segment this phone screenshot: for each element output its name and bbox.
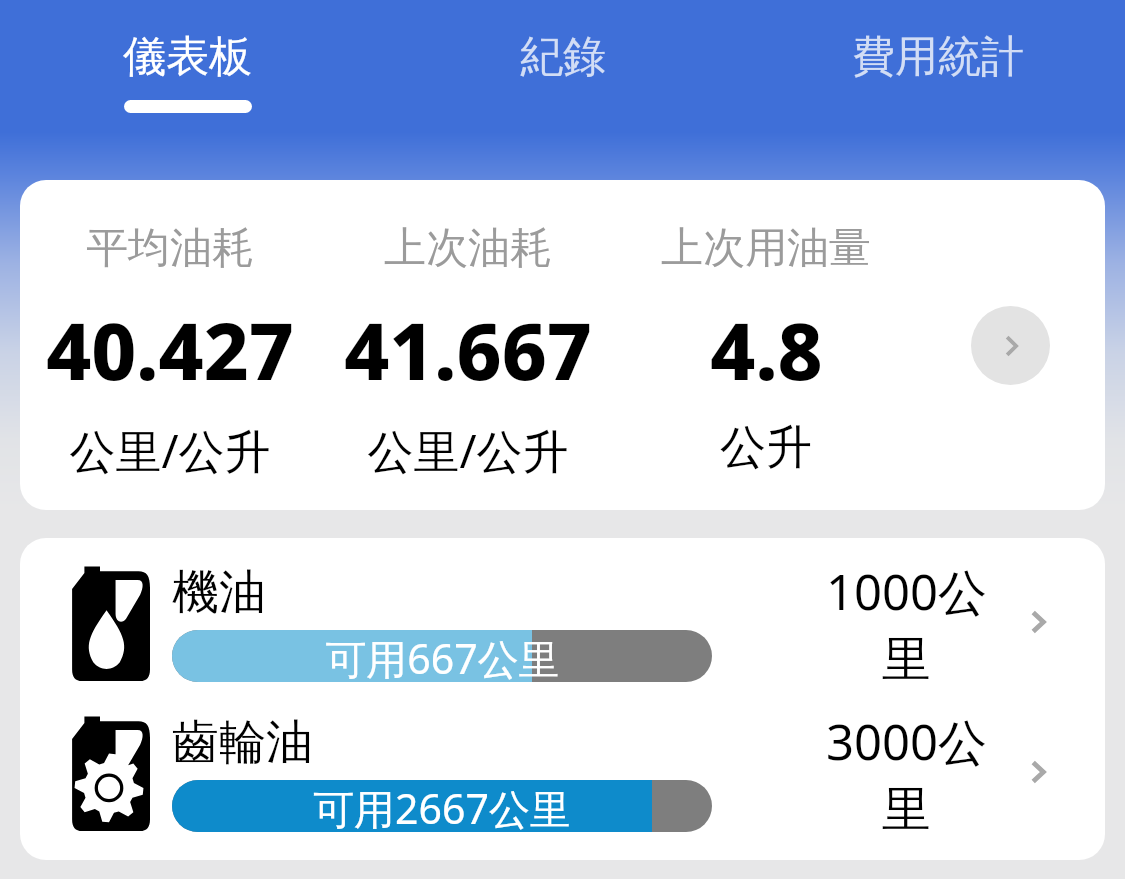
staticText: 40.427 [46,297,294,403]
staticText: 紀錄 [520,30,606,84]
staticText: 儀表板 [123,30,252,84]
staticText: 機油 [172,563,266,622]
staticText: 上次油耗 [384,222,552,275]
button[interactable]: Open 齒輪油 [1009,743,1067,801]
staticText: 齒輪油 [172,713,313,772]
button[interactable]: 機油 [20,558,1105,686]
button[interactable]: 費用統計 [750,0,1125,123]
button[interactable]: 平均油耗 [20,180,1105,510]
button[interactable]: 齒輪油 [20,708,1105,836]
staticText: 3000公里 [804,708,1009,836]
staticText: 1000公里 [804,558,1009,686]
button[interactable]: 紀錄 [375,0,750,123]
button[interactable]: More details [971,306,1050,385]
staticText: 可用667公里 [325,630,560,682]
button[interactable]: Open 機油 [1009,593,1067,651]
staticText: 4.8 [710,297,823,403]
staticText: 公里/公升 [69,419,271,482]
staticText: 公升 [720,419,812,477]
button[interactable]: 儀表板 [0,0,375,123]
staticText: 公里/公升 [367,419,569,482]
staticText: 平均油耗 [86,222,254,275]
staticText: 上次用油量 [661,222,871,275]
staticText: 可用2667公里 [313,780,571,832]
staticText: 41.667 [344,297,592,403]
staticText: 費用統計 [852,30,1024,84]
